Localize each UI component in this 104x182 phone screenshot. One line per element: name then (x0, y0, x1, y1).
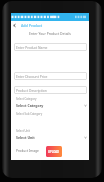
staticText: Product Image (16, 148, 39, 152)
button[interactable]: UPLOAD (46, 146, 62, 157)
staticText: Product Description (16, 88, 47, 92)
button[interactable]: Enter Product Name (14, 43, 87, 51)
staticText: Enter Your Product Details (29, 31, 71, 36)
staticText: Enter Discount Price (16, 74, 48, 78)
staticText: Select Category (16, 103, 44, 108)
button[interactable]: Select Category (16, 103, 87, 108)
staticText: Select Sub Category (16, 112, 43, 116)
staticText: Select Category (16, 97, 37, 101)
staticText: Enter Product Name (16, 45, 48, 49)
button[interactable]: Enter Discount Price (14, 72, 87, 80)
button[interactable]: Product Description (14, 86, 87, 94)
staticText: Select Unit (16, 129, 30, 133)
staticText: Select Unit (16, 135, 35, 140)
button[interactable]: Select Unit (16, 135, 87, 140)
staticText: Add Product (21, 23, 43, 28)
button[interactable]: Back (11, 21, 18, 29)
staticText: UPLOAD (48, 150, 60, 154)
